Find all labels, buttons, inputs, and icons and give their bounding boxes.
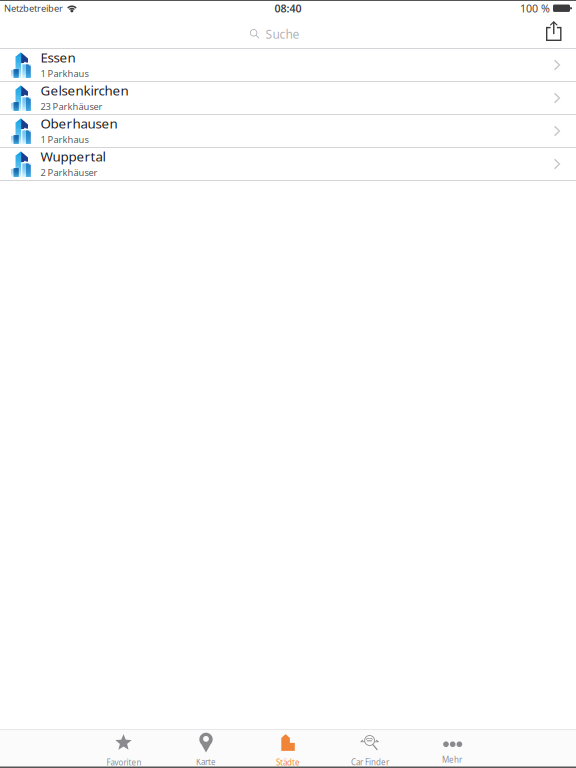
button[interactable]: Karte: [165, 729, 247, 768]
staticText: Karte: [196, 757, 216, 767]
button[interactable]: Car Finder: [329, 729, 411, 768]
staticText: Mehr: [442, 754, 462, 765]
staticText: 1 Parkhaus: [41, 133, 89, 146]
staticText: 100 %: [520, 1, 550, 15]
staticText: Car Finder: [351, 757, 389, 767]
staticText: Wuppertal: [41, 147, 106, 165]
staticText: Essen: [41, 48, 76, 66]
staticText: Suche: [265, 26, 299, 42]
staticText: Gelsenkirchen: [41, 81, 129, 99]
button[interactable]: Gelsenkirchen: [0, 82, 576, 115]
staticText: Städte: [276, 757, 300, 768]
staticText: 08:40: [274, 1, 301, 15]
button[interactable]: Städte: [247, 729, 329, 768]
button[interactable]: Essen: [0, 49, 576, 82]
button[interactable]: Favoriten: [83, 729, 165, 768]
button[interactable]: Mehr: [411, 729, 493, 768]
staticText: 2 Parkhäuser: [41, 166, 98, 179]
staticText: Netzbetreiber: [4, 2, 63, 14]
button[interactable]: Wuppertal: [0, 148, 576, 181]
button[interactable]: Oberhausen: [0, 115, 576, 148]
staticText: Favoriten: [106, 757, 141, 768]
staticText: Oberhausen: [41, 114, 118, 132]
button[interactable]: Share: [532, 20, 576, 48]
staticText: 1 Parkhaus: [41, 67, 89, 80]
staticText: 23 Parkhäuser: [41, 100, 103, 113]
